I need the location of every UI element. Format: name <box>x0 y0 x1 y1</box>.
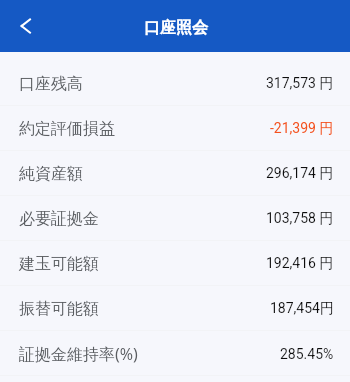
staticText: 317,573 円 <box>266 75 334 93</box>
staticText: 純資産額 <box>19 164 83 184</box>
button[interactable]: 証拠金維持率(%) <box>0 331 350 375</box>
staticText: 振替可能額 <box>19 299 99 319</box>
button[interactable]: 必要証拠金 <box>0 196 350 240</box>
staticText: 103,758 円 <box>266 210 334 228</box>
staticText: 285.45% <box>280 346 334 362</box>
staticText: 口座残高 <box>19 74 83 94</box>
staticText: 296,174 円 <box>266 165 334 183</box>
button[interactable]: 建玉可能額 <box>0 241 350 285</box>
button[interactable]: 振替可能額 <box>0 286 350 330</box>
button[interactable]: 約定評価損益 <box>0 106 350 150</box>
staticText: 約定評価損益 <box>19 119 115 139</box>
staticText: 口座照会 <box>144 18 208 38</box>
button[interactable]: Back <box>2 2 50 50</box>
staticText: 187,454円 <box>270 300 334 318</box>
staticText: 192,416 円 <box>266 255 334 273</box>
staticText: 必要証拠金 <box>19 209 99 229</box>
button[interactable]: 口座残高 <box>0 61 350 105</box>
staticText: 建玉可能額 <box>19 254 99 274</box>
staticText: -21,399 円 <box>270 120 334 138</box>
staticText: 証拠金維持率(%) <box>19 343 138 365</box>
button[interactable]: 純資産額 <box>0 151 350 195</box>
